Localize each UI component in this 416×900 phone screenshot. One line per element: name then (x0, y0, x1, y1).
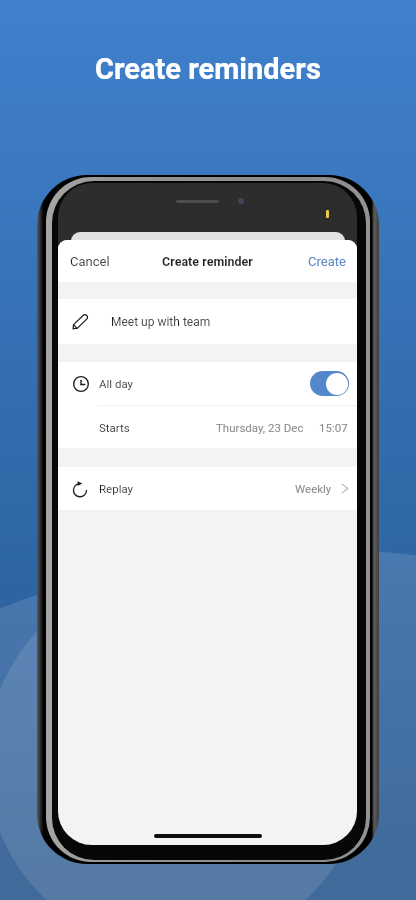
button[interactable]: Replay (58, 467, 357, 510)
staticText: Weekly (295, 482, 332, 495)
staticText: Create reminders (95, 52, 321, 86)
staticText: Create (308, 254, 346, 269)
staticText: Cancel (70, 254, 110, 269)
button[interactable]: All day toggle (310, 371, 349, 396)
button[interactable]: Meet up with team (58, 299, 357, 344)
staticText: Meet up with team (111, 315, 211, 329)
staticText: 15:07 (319, 421, 348, 434)
button[interactable]: Starts (58, 406, 357, 448)
button[interactable]: All day (58, 362, 357, 405)
staticText: Thursday, 23 Dec (216, 421, 304, 434)
staticText: All day (99, 377, 134, 390)
staticText: Create reminder (162, 254, 253, 269)
staticText: Starts (99, 421, 130, 434)
button[interactable]: Create (297, 245, 357, 278)
button[interactable]: Cancel (58, 245, 122, 278)
staticText: Replay (99, 482, 134, 495)
